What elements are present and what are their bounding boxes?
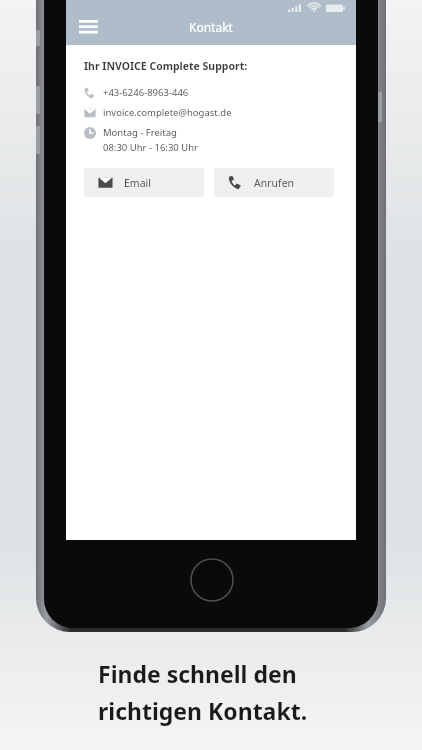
staticText: richtigen Kontakt.	[98, 695, 308, 726]
staticText: invoice.complete@hogast.de	[103, 106, 232, 119]
staticText: Anrufen	[254, 176, 295, 190]
staticText: Ihr INVOICE Complete Support:	[84, 59, 248, 73]
button[interactable]: Email	[84, 168, 204, 197]
staticText: Finde schnell den	[98, 658, 297, 689]
staticText: Montag - Freitag	[103, 126, 177, 139]
staticText: 08:30 Uhr - 16:30 Uhr	[103, 141, 198, 154]
staticText: Email	[124, 176, 151, 190]
staticText: +43-6246-8963-446	[103, 86, 189, 99]
button[interactable]: Menu	[70, 9, 106, 45]
staticText: Kontakt	[189, 19, 233, 35]
button[interactable]: Anrufen	[214, 168, 334, 197]
